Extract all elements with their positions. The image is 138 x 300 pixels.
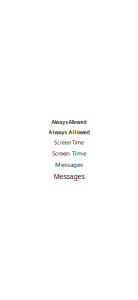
staticText: Messages	[53, 172, 84, 181]
staticText: Messages	[55, 160, 83, 169]
staticText: Screen Time	[54, 139, 84, 146]
staticText: Always Allowed	[51, 119, 86, 125]
staticText: Always Allowed	[48, 128, 89, 136]
staticText: Screen Time	[52, 149, 86, 157]
